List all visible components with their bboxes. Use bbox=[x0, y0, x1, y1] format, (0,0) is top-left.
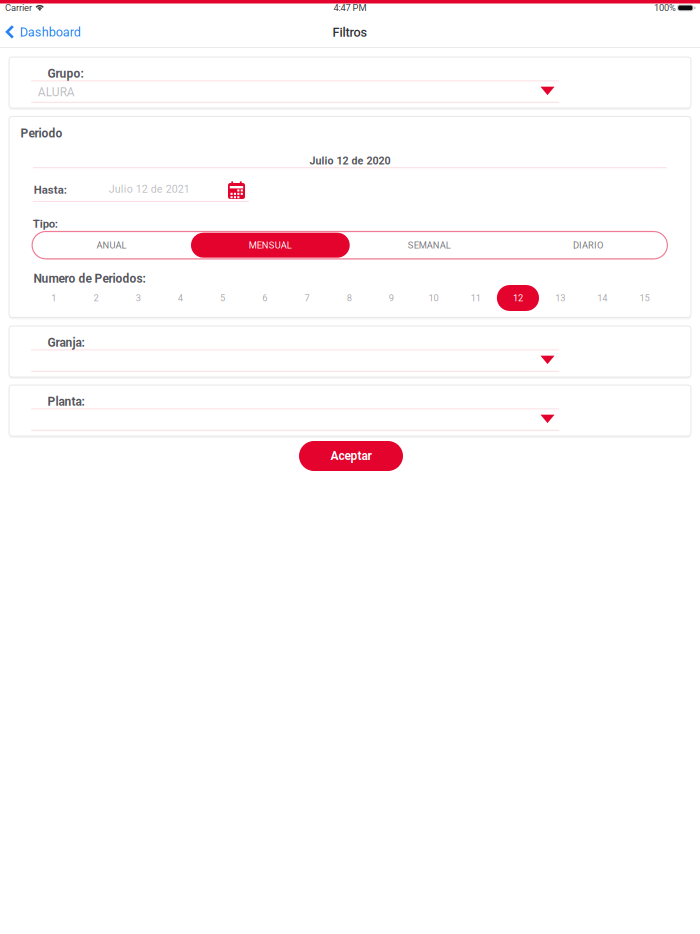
button[interactable]: 9 bbox=[370, 285, 412, 311]
staticText: 8 bbox=[347, 292, 352, 303]
staticText: 9 bbox=[389, 292, 394, 303]
staticText: DIARIO bbox=[573, 240, 603, 251]
button[interactable]: 1 bbox=[33, 285, 75, 311]
button[interactable]: 8 bbox=[328, 285, 370, 311]
button[interactable]: 3 bbox=[117, 285, 159, 311]
staticText: 7 bbox=[304, 292, 309, 303]
staticText: Grupo: bbox=[47, 66, 83, 81]
staticText: Carrier bbox=[5, 2, 32, 13]
staticText: Planta: bbox=[47, 394, 84, 409]
staticText: 12 bbox=[513, 292, 523, 303]
staticText: 2 bbox=[93, 292, 98, 303]
button[interactable]: SEMANAL bbox=[350, 233, 509, 258]
button[interactable]: 10 bbox=[412, 285, 455, 311]
button[interactable]: 7 bbox=[286, 285, 328, 311]
button[interactable]: DIARIO bbox=[509, 233, 667, 258]
staticText: 14 bbox=[597, 292, 607, 303]
staticText: 1 bbox=[51, 292, 56, 303]
button[interactable]: Aceptar bbox=[299, 441, 403, 471]
staticText: MENSUAL bbox=[249, 240, 292, 251]
button[interactable]: Dashboard bbox=[0, 17, 96, 51]
staticText: 3 bbox=[136, 292, 141, 303]
staticText: 4:47 PM bbox=[333, 2, 366, 13]
staticText: Filtros bbox=[332, 25, 367, 40]
staticText: 11 bbox=[471, 292, 481, 303]
staticText: 15 bbox=[639, 292, 649, 303]
button[interactable]: 5 bbox=[201, 285, 244, 311]
staticText: 4 bbox=[178, 292, 183, 303]
staticText: Tipo: bbox=[33, 217, 58, 230]
staticText: SEMANAL bbox=[408, 240, 451, 251]
staticText: Hasta: bbox=[34, 183, 67, 196]
button[interactable]: 15 bbox=[623, 285, 666, 311]
button[interactable]: 14 bbox=[581, 285, 623, 311]
staticText: Julio 12 de 2021 bbox=[109, 183, 190, 195]
staticText: ALURA bbox=[38, 85, 75, 99]
staticText: ANUAL bbox=[96, 240, 126, 251]
button[interactable]: ANUAL bbox=[32, 233, 191, 258]
staticText: Periodo bbox=[20, 126, 62, 140]
staticText: Dashboard bbox=[20, 25, 81, 40]
staticText: 10 bbox=[428, 292, 438, 303]
button[interactable]: 2 bbox=[75, 285, 117, 311]
button[interactable]: Pick a date bbox=[223, 179, 249, 203]
button[interactable]: Planta: bbox=[9, 385, 691, 436]
staticText: Numero de Periodos: bbox=[33, 272, 145, 286]
button[interactable]: 6 bbox=[244, 285, 286, 311]
staticText: 6 bbox=[262, 292, 267, 303]
staticText: Granja: bbox=[47, 335, 84, 350]
button[interactable]: 11 bbox=[455, 285, 497, 311]
button[interactable]: 13 bbox=[539, 285, 581, 311]
button[interactable]: Grupo: bbox=[9, 57, 691, 108]
staticText: 5 bbox=[220, 292, 225, 303]
button[interactable]: Granja: bbox=[9, 326, 691, 377]
staticText: 13 bbox=[555, 292, 565, 303]
button[interactable]: 4 bbox=[159, 285, 201, 311]
staticText: 100% bbox=[654, 2, 676, 13]
staticText: Aceptar bbox=[330, 449, 371, 463]
staticText: Julio 12 de 2020 bbox=[309, 154, 390, 167]
button[interactable]: 12 bbox=[497, 285, 539, 311]
button[interactable]: MENSUAL bbox=[191, 233, 350, 258]
